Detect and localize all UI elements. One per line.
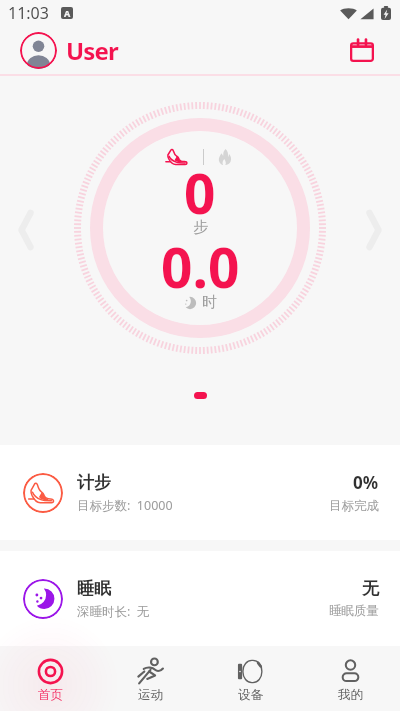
staticText: 时 <box>202 293 217 312</box>
button[interactable]: User <box>20 32 119 69</box>
staticText: 我的 <box>338 687 363 703</box>
staticText: 0.0 <box>161 229 240 304</box>
staticText: 运动 <box>138 687 163 703</box>
staticText: 睡眠质量 <box>329 603 379 619</box>
button[interactable]: 计步 <box>0 445 400 540</box>
staticText: 计步 <box>77 472 111 493</box>
button[interactable]: 设备 <box>200 646 300 711</box>
staticText: 睡眠 <box>77 578 111 599</box>
button[interactable]: 睡眠 <box>0 551 400 646</box>
staticText: 0% <box>353 471 379 494</box>
button[interactable]: 运动 <box>100 646 200 711</box>
staticText: 首页 <box>38 687 63 703</box>
staticText: 11:03 <box>8 2 49 24</box>
staticText: A <box>64 7 71 19</box>
button[interactable]: Calendar <box>340 28 384 72</box>
staticText: 深睡时长: 无 <box>77 603 150 620</box>
staticText: 目标步数: 10000 <box>77 497 173 514</box>
staticText: 步 <box>193 218 208 237</box>
button[interactable]: 首页 <box>0 646 100 711</box>
button[interactable]: Next day <box>354 210 394 250</box>
staticText: 无 <box>362 578 379 599</box>
staticText: User <box>66 34 119 67</box>
button[interactable]: 我的 <box>300 646 400 711</box>
staticText: 目标完成 <box>329 498 379 514</box>
staticText: 设备 <box>238 687 263 703</box>
staticText: 0 <box>184 155 216 230</box>
button[interactable]: Previous day <box>6 210 46 250</box>
